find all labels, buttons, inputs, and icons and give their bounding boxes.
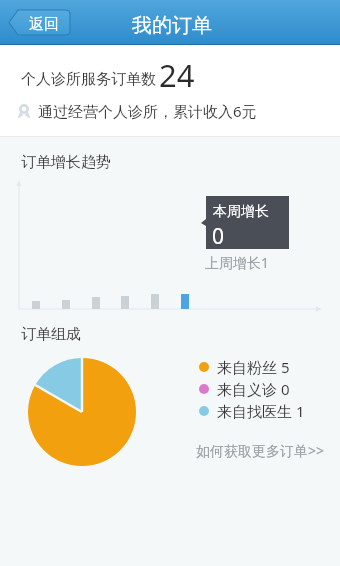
staticText: 通过经营个人诊所，累计收入6元 <box>38 101 257 121</box>
staticText: 个人诊所服务订单数 <box>21 70 156 89</box>
staticText: 上周增长1 <box>205 253 270 272</box>
staticText: 订单增长趋势 <box>21 153 111 172</box>
staticText: 本周增长 <box>213 203 269 221</box>
staticText: 来自义诊 0 <box>217 379 290 399</box>
staticText: 返回 <box>29 15 59 34</box>
button[interactable]: 返回 <box>8 9 71 36</box>
button[interactable]: 如何获取更多订单>> <box>196 441 325 460</box>
staticText: 24 <box>159 54 195 96</box>
staticText: 0 <box>212 222 225 251</box>
staticText: 我的订单 <box>132 13 212 38</box>
staticText: 来自找医生 1 <box>217 401 305 421</box>
staticText: 订单组成 <box>21 325 81 344</box>
staticText: 来自粉丝 5 <box>217 357 290 377</box>
